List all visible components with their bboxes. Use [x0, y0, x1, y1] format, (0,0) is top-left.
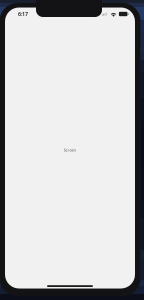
staticText: 6:17	[18, 10, 28, 18]
button[interactable]: Cellular, Wi-Fi and battery status	[102, 11, 129, 16]
staticText: Screen	[63, 147, 76, 152]
